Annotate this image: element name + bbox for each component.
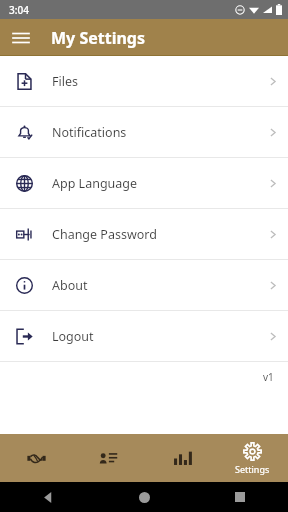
staticText: App Language xyxy=(52,175,138,192)
staticText: Notifications xyxy=(52,124,127,141)
staticText: Logout xyxy=(52,328,94,345)
staticText: My Settings xyxy=(51,27,145,49)
button[interactable]: Logout xyxy=(0,311,288,361)
staticText: About xyxy=(52,277,88,294)
button[interactable]: App Language xyxy=(0,158,288,208)
button[interactable]: Open navigation menu xyxy=(6,23,36,53)
button[interactable]: Notifications xyxy=(0,107,288,157)
other: Home xyxy=(139,492,150,503)
button[interactable]: Deals xyxy=(0,434,72,482)
staticText: Change Password xyxy=(52,226,157,243)
staticText: 3:04 xyxy=(9,3,29,17)
button[interactable]: Change Password xyxy=(0,209,288,259)
staticText: Files xyxy=(52,73,78,90)
staticText: v1 xyxy=(263,370,274,384)
button[interactable]: Settings xyxy=(216,434,288,482)
button[interactable]: Files xyxy=(0,56,288,106)
staticText: Settings xyxy=(235,463,270,475)
button[interactable]: About xyxy=(0,260,288,310)
button[interactable]: Reports xyxy=(144,434,216,482)
other: Back xyxy=(43,492,54,503)
button[interactable]: Contacts xyxy=(72,434,144,482)
